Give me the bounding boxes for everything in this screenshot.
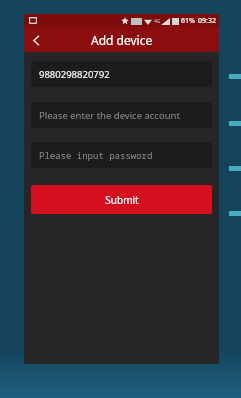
staticText: Add device [91, 32, 153, 48]
staticText: 9880298820792 [39, 68, 110, 81]
button[interactable]: Please input password [31, 142, 212, 168]
button[interactable]: 9880298820792 [31, 61, 212, 87]
staticText: 4G [154, 18, 161, 25]
staticText: Please enter the device account [39, 109, 180, 122]
staticText: Please input password [39, 149, 153, 161]
button[interactable]: Submit [31, 185, 212, 214]
button[interactable]: Back [24, 28, 48, 52]
staticText: Submit [105, 193, 139, 207]
staticText: 61% [181, 16, 195, 26]
staticText: 09:32 [198, 16, 216, 26]
button[interactable]: Please enter the device account [31, 102, 212, 128]
